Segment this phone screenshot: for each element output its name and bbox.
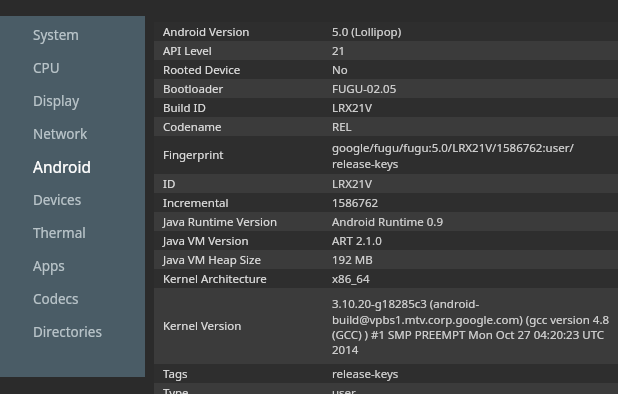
staticText: ART 2.1.0 bbox=[332, 233, 382, 249]
staticText: LRX21V bbox=[332, 100, 372, 116]
button[interactable]: Bootloader bbox=[154, 79, 618, 98]
button[interactable]: Apps bbox=[0, 249, 145, 282]
button[interactable]: API Level bbox=[154, 41, 618, 60]
button[interactable]: Tags bbox=[154, 364, 618, 383]
staticText: Java VM Heap Size bbox=[163, 252, 261, 268]
staticText: Android bbox=[33, 156, 92, 177]
staticText: Incremental bbox=[163, 195, 229, 211]
staticText: x86_64 bbox=[332, 271, 370, 287]
button[interactable]: Build ID bbox=[154, 98, 618, 117]
button[interactable]: ID bbox=[154, 174, 618, 193]
button[interactable]: Network bbox=[0, 117, 145, 150]
staticText: Rooted Device bbox=[163, 62, 241, 78]
button[interactable]: Directories bbox=[0, 315, 145, 348]
staticText: CPU bbox=[33, 59, 60, 77]
button[interactable]: Devices bbox=[0, 183, 145, 216]
button[interactable]: Codecs bbox=[0, 282, 145, 315]
staticText: No bbox=[332, 62, 348, 78]
button[interactable]: Incremental bbox=[154, 193, 618, 212]
staticText: Bootloader bbox=[163, 81, 224, 97]
staticText: FUGU-02.05 bbox=[332, 81, 397, 97]
staticText: Android Version bbox=[163, 24, 250, 40]
button[interactable]: Rooted Device bbox=[154, 60, 618, 79]
staticText: Kernel Version bbox=[163, 318, 242, 334]
staticText: Codecs bbox=[33, 290, 79, 308]
staticText: LRX21V bbox=[332, 176, 372, 192]
staticText: Fingerprint bbox=[163, 147, 224, 163]
button[interactable]: Fingerprint bbox=[154, 136, 618, 174]
button[interactable]: Kernel Architecture bbox=[154, 269, 618, 288]
staticText: Java Runtime Version bbox=[163, 214, 278, 230]
staticText: Type bbox=[163, 385, 189, 394]
button[interactable]: Display bbox=[0, 84, 145, 117]
staticText: Codename bbox=[163, 119, 222, 135]
staticText: Apps bbox=[33, 257, 65, 275]
staticText: Kernel Architecture bbox=[163, 271, 267, 287]
staticText: 3.10.20-g18285c3 (android- build@vpbs1.m… bbox=[332, 296, 610, 357]
button[interactable]: Thermal bbox=[0, 216, 145, 249]
staticText: Tags bbox=[163, 366, 188, 382]
button[interactable]: Java VM Version bbox=[154, 231, 618, 250]
staticText: Directories bbox=[33, 323, 102, 341]
staticText: API Level bbox=[163, 43, 212, 59]
staticText: 5.0 (Lollipop) bbox=[332, 24, 402, 40]
staticText: Thermal bbox=[33, 224, 86, 242]
staticText: Android Runtime 0.9 bbox=[332, 214, 443, 230]
staticText: Build ID bbox=[163, 100, 206, 116]
button[interactable]: Type bbox=[154, 383, 618, 394]
staticText: 21 bbox=[332, 43, 346, 59]
staticText: Display bbox=[33, 92, 80, 110]
staticText: ID bbox=[163, 176, 176, 192]
button[interactable]: Android bbox=[0, 150, 145, 183]
staticText: Java VM Version bbox=[163, 233, 249, 249]
button[interactable]: Codename bbox=[154, 117, 618, 136]
staticText: release-keys bbox=[332, 366, 399, 382]
button[interactable]: Kernel Version bbox=[154, 288, 618, 364]
button[interactable]: System bbox=[0, 18, 145, 51]
staticText: System bbox=[33, 26, 79, 44]
staticText: Network bbox=[33, 125, 88, 143]
staticText: user bbox=[332, 385, 356, 394]
button[interactable]: CPU bbox=[0, 51, 145, 84]
staticText: Devices bbox=[33, 191, 82, 209]
button[interactable]: Android Version bbox=[154, 22, 618, 41]
staticText: REL bbox=[332, 119, 352, 135]
staticText: 1586762 bbox=[332, 195, 379, 211]
button[interactable]: Java VM Heap Size bbox=[154, 250, 618, 269]
staticText: google/fugu/fugu:5.0/LRX21V/1586762:user… bbox=[332, 140, 574, 171]
staticText: 192 MB bbox=[332, 252, 373, 268]
button[interactable]: Java Runtime Version bbox=[154, 212, 618, 231]
